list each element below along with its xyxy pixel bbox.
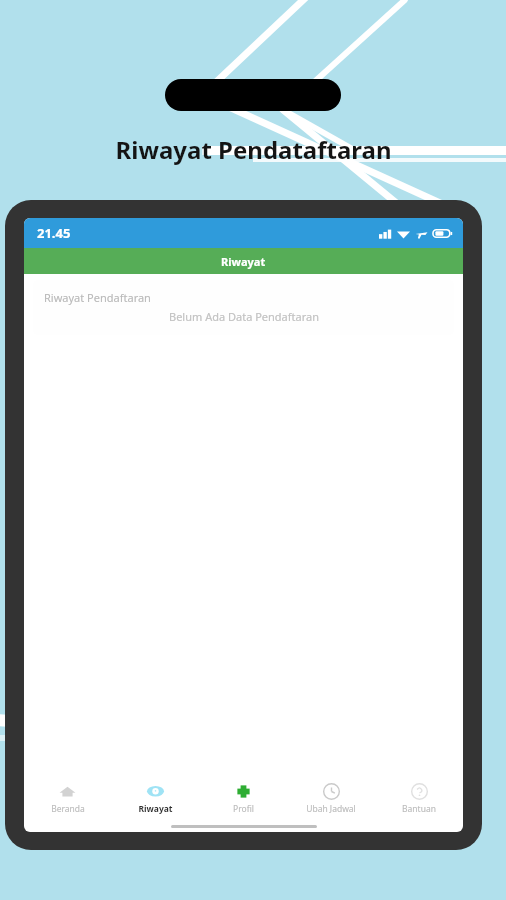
- button[interactable]: Riwayat: [111, 777, 199, 821]
- button[interactable]: Riwayat Pendaftaran: [33, 280, 454, 335]
- other: Ubah Jadwal: [323, 783, 340, 800]
- staticText: Riwayat Pendaftaran: [44, 290, 151, 305]
- other: Beranda: [59, 783, 76, 800]
- button[interactable]: Ubah Jadwal: [287, 777, 375, 821]
- staticText: Bantuan: [402, 803, 436, 815]
- other: Bantuan: [411, 783, 428, 800]
- staticText: Belum Ada Data Pendaftaran: [169, 309, 319, 324]
- other: Riwayat: [147, 783, 164, 800]
- other: Profil: [235, 783, 252, 800]
- staticText: Beranda: [51, 803, 85, 815]
- staticText: Ubah Jadwal: [306, 803, 356, 815]
- button[interactable]: Beranda: [24, 777, 111, 821]
- button[interactable]: Profil: [199, 777, 287, 821]
- button[interactable]: Bantuan: [375, 777, 463, 821]
- staticText: 21.45: [37, 224, 71, 242]
- staticText: Riwayat: [138, 803, 173, 815]
- staticText: Riwayat: [221, 254, 266, 269]
- staticText: Profil: [233, 803, 254, 815]
- staticText: Riwayat Pendataftaran: [115, 133, 392, 166]
